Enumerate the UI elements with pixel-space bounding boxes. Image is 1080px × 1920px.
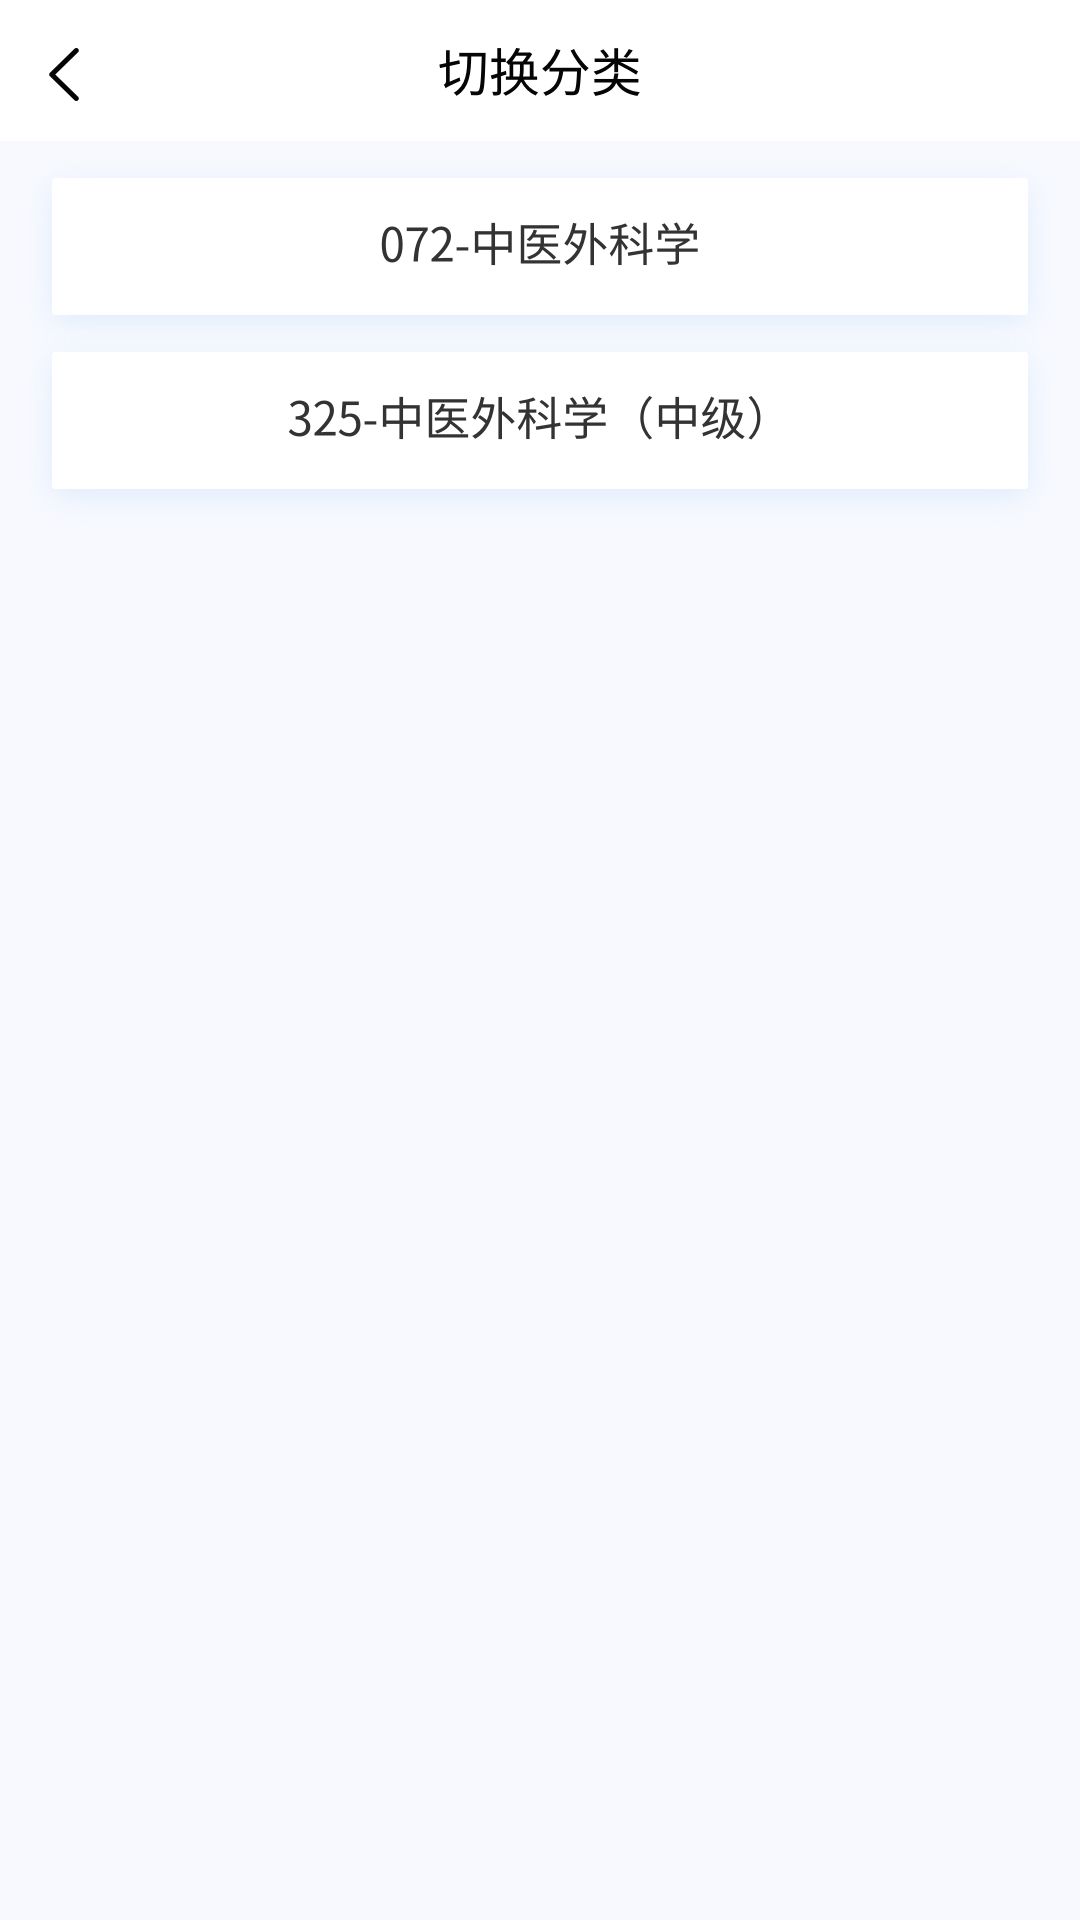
button[interactable]: Back <box>16 22 112 118</box>
button[interactable]: 072-中医外科学 <box>52 178 1028 315</box>
staticText: 325-中医外科学（中级） <box>287 382 792 449</box>
staticText: 切换分类 <box>438 33 642 106</box>
button[interactable]: 325-中医外科学（中级） <box>52 352 1028 489</box>
staticText: 072-中医外科学 <box>379 208 700 275</box>
